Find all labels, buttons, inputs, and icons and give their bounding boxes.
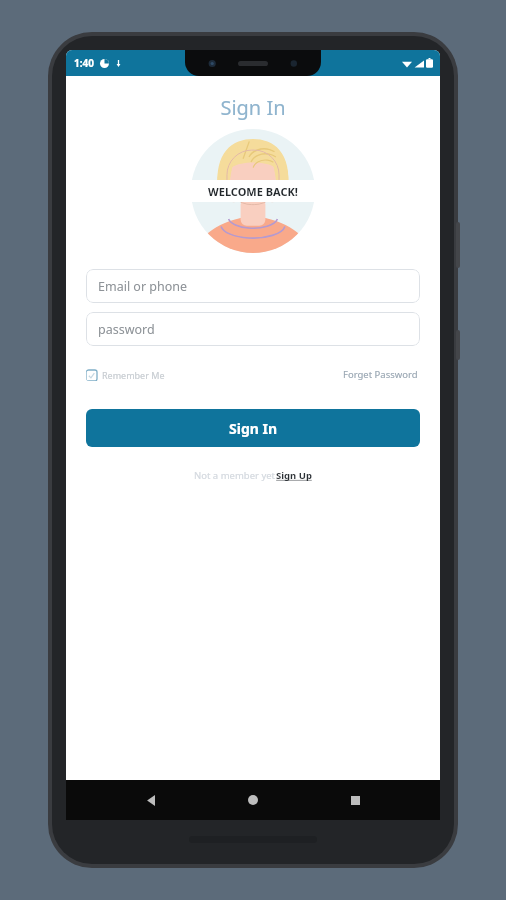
button[interactable]: Home	[236, 783, 270, 817]
staticText: WELCOME BACK!	[208, 184, 298, 199]
button[interactable]: password	[86, 312, 420, 346]
button[interactable]: Sign Up	[276, 469, 312, 482]
staticText: Forget Password	[343, 368, 418, 381]
button[interactable]: Remember Me	[86, 369, 165, 381]
staticText: Email or phone	[98, 278, 188, 295]
staticText: Sign In	[66, 94, 440, 121]
staticText: password	[98, 321, 155, 338]
staticText: Not a member yet	[194, 469, 276, 482]
staticText: Remember Me	[102, 369, 165, 381]
button[interactable]: Sign In	[86, 409, 420, 447]
staticText: 1:40	[74, 56, 94, 70]
button[interactable]: Back	[134, 783, 168, 817]
button[interactable]: Email or phone	[86, 269, 420, 303]
button[interactable]: Recents	[338, 783, 372, 817]
staticText: Sign In	[229, 419, 278, 438]
button[interactable]: Forget Password	[341, 366, 420, 383]
staticText: Sign Up	[276, 469, 312, 482]
